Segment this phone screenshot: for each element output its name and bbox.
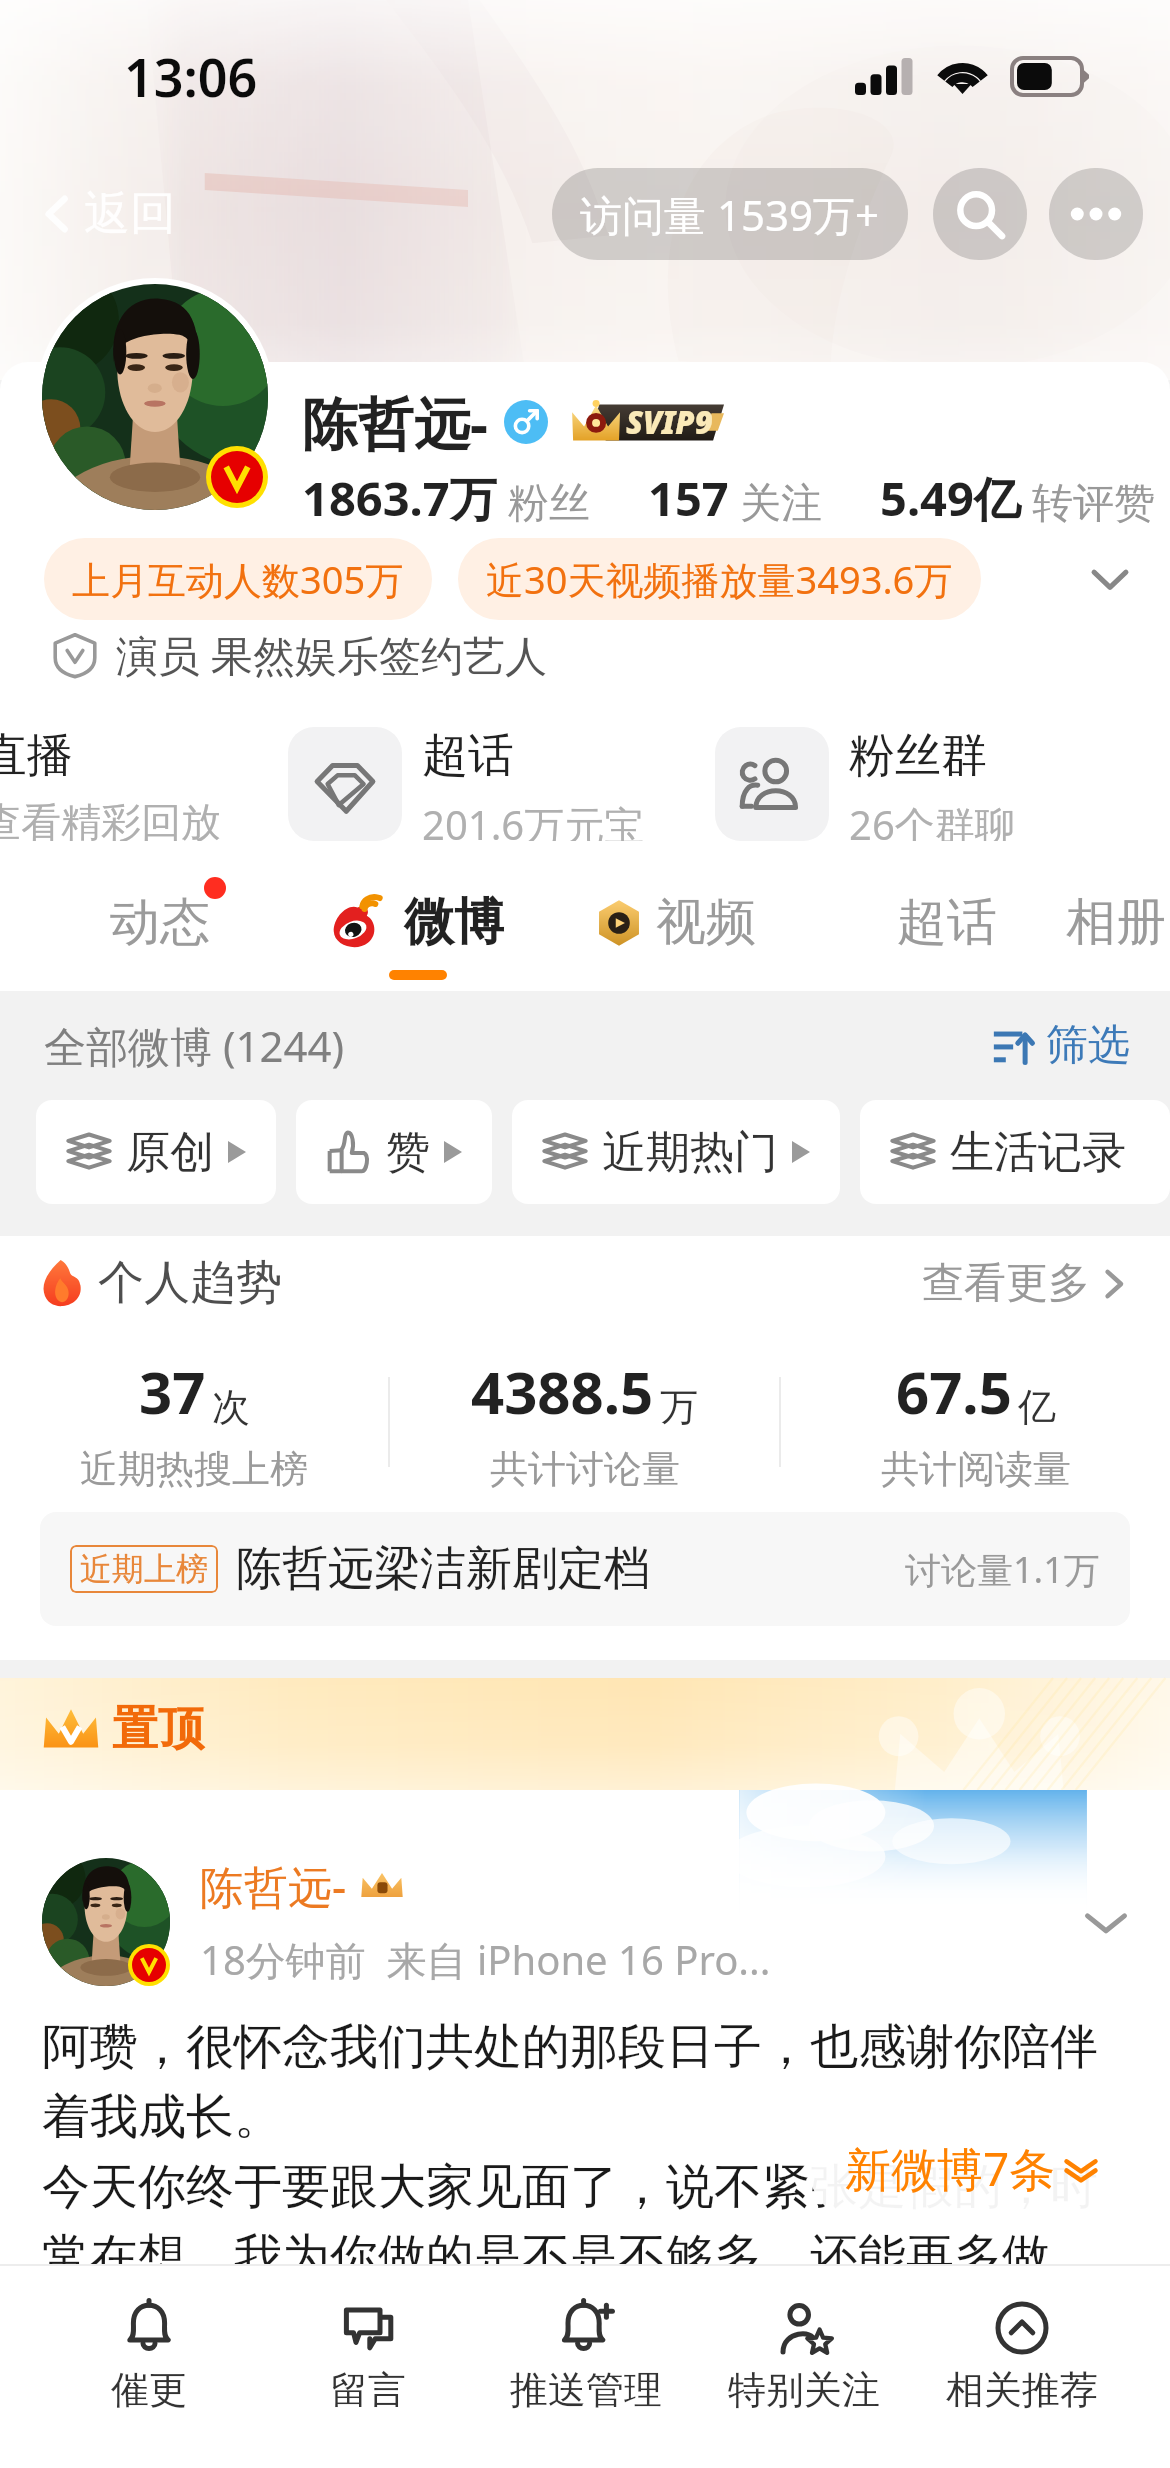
staticText: 个人趋势 — [98, 1254, 282, 1312]
button[interactable]: Search — [933, 168, 1027, 260]
staticText: 关注 — [740, 478, 822, 530]
staticText: 陈哲远梁洁新剧定档 — [236, 1540, 650, 1598]
staticText: 共计阅读量 — [881, 1445, 1071, 1493]
button[interactable]: 67.5 — [781, 1352, 1170, 1493]
button[interactable]: 直播 — [0, 727, 288, 841]
button[interactable]: 原创 — [36, 1100, 276, 1204]
button[interactable]: 37 — [0, 1352, 388, 1493]
staticText: 催更 — [111, 2366, 187, 2414]
button[interactable]: 筛选 — [992, 1019, 1130, 1072]
button[interactable]: 近期上榜 — [40, 1512, 1130, 1626]
staticText: 推送管理 — [510, 2366, 662, 2414]
staticText: 26个群聊 — [849, 797, 1015, 841]
staticText: 微博 — [404, 891, 504, 954]
staticText: 157 — [648, 466, 729, 530]
button[interactable]: 访问量 1539万+ — [552, 168, 908, 260]
staticText: 陈哲远- — [302, 384, 488, 460]
button[interactable]: 粉丝群 — [715, 727, 1135, 841]
button[interactable]: 5.49亿 — [880, 466, 1155, 530]
staticText: 视频 — [656, 891, 756, 954]
staticText: 5.49亿 — [880, 466, 1021, 530]
staticText: 相册 — [1066, 891, 1166, 954]
staticText: 演员 果然娱乐签约艺人 — [116, 626, 547, 683]
staticText: 置顶 — [112, 1700, 204, 1758]
button[interactable]: 上月互动人数305万 — [44, 538, 432, 620]
staticText: 动态 — [110, 891, 210, 954]
button[interactable]: 超话 — [832, 891, 1061, 991]
staticText: 近期热搜上榜 — [80, 1445, 308, 1493]
button[interactable]: 相册 — [1061, 891, 1170, 991]
button[interactable]: 赞 — [296, 1100, 492, 1204]
button[interactable]: 动态 — [0, 891, 320, 991]
button[interactable]: 推送管理 — [477, 2266, 695, 2468]
staticText: 生活记录 — [950, 1125, 1126, 1180]
staticText: 原创 — [126, 1125, 214, 1180]
staticText: 筛选 — [1046, 1019, 1130, 1072]
staticText: 新微博7条 — [845, 2137, 1056, 2200]
staticText: 访问量 1539万+ — [580, 186, 880, 243]
button[interactable]: 返回 — [38, 177, 176, 251]
staticText: 1863.7万 — [302, 466, 497, 530]
staticText: 转评赞 — [1032, 478, 1155, 530]
staticText: 67.5 — [896, 1352, 1012, 1431]
button[interactable]: 新微博7条 — [809, 2116, 1136, 2221]
button[interactable]: 超话 — [288, 727, 715, 841]
button[interactable]: Expand — [1080, 549, 1140, 609]
button[interactable]: 视频 — [516, 891, 832, 991]
button[interactable]: 留言 — [258, 2266, 477, 2468]
staticText: 共计讨论量 — [490, 1445, 680, 1493]
staticText: 13:06 — [124, 41, 258, 112]
staticText: 粉丝群 — [849, 727, 987, 785]
button[interactable]: 查看更多 — [922, 1257, 1130, 1310]
staticText: 粉丝 — [508, 478, 590, 530]
button[interactable]: 近期热门 — [512, 1100, 840, 1204]
staticText: 近期上榜 — [80, 1549, 208, 1589]
staticText: 直播 — [0, 727, 73, 785]
staticText: 上月互动人数305万 — [72, 553, 404, 605]
button[interactable]: 4388.5 — [390, 1352, 779, 1493]
button[interactable]: 生活记录 — [860, 1100, 1170, 1204]
staticText: 亿 — [1018, 1383, 1056, 1431]
staticText: SVIP9 — [626, 401, 713, 443]
staticText: 留言 — [330, 2366, 406, 2414]
button[interactable]: More options — [1049, 168, 1143, 260]
staticText: 4388.5 — [471, 1352, 654, 1431]
staticText: 超话 — [897, 891, 997, 954]
staticText: 37 — [139, 1352, 206, 1431]
button[interactable]: 相关推荐 — [913, 2266, 1131, 2468]
button[interactable]: 近30天视频播放量3493.6万 — [458, 538, 981, 620]
button[interactable]: 1863.7万 — [302, 466, 590, 530]
staticText: 陈哲远- — [200, 1856, 347, 1916]
staticText: 近期热门 — [602, 1125, 778, 1180]
button[interactable]: 特别关注 — [695, 2266, 913, 2468]
staticText: 查看更多 — [922, 1257, 1090, 1310]
staticText: 近30天视频播放量3493.6万 — [486, 553, 953, 605]
staticText: 相关推荐 — [946, 2366, 1098, 2414]
staticText: 全部微博 (1244) — [44, 1017, 345, 1074]
staticText: 18分钟前 来自 iPhone 16 Pro... — [200, 1932, 771, 1987]
staticText: 超话 — [422, 727, 514, 785]
button[interactable]: 微博 — [320, 891, 516, 991]
staticText: 次 — [212, 1383, 250, 1431]
staticText: 返回 — [84, 185, 176, 243]
button[interactable]: More — [1074, 1890, 1138, 1954]
button[interactable]: 157 — [648, 466, 822, 530]
staticText: 特别关注 — [728, 2366, 880, 2414]
staticText: 阿瓒，很怀念我们共处的那段日子，也感谢你陪伴着我成长。 今天你终于要跟大家见面了… — [42, 2017, 1136, 2288]
staticText: 201.6万元宝 — [422, 797, 645, 841]
button[interactable]: 催更 — [39, 2266, 258, 2468]
staticText: 讨论量1.1万 — [905, 1545, 1100, 1594]
staticText: 万 — [660, 1383, 698, 1431]
staticText: 赞 — [386, 1125, 430, 1180]
staticText: 查看精彩回放 — [0, 797, 221, 841]
